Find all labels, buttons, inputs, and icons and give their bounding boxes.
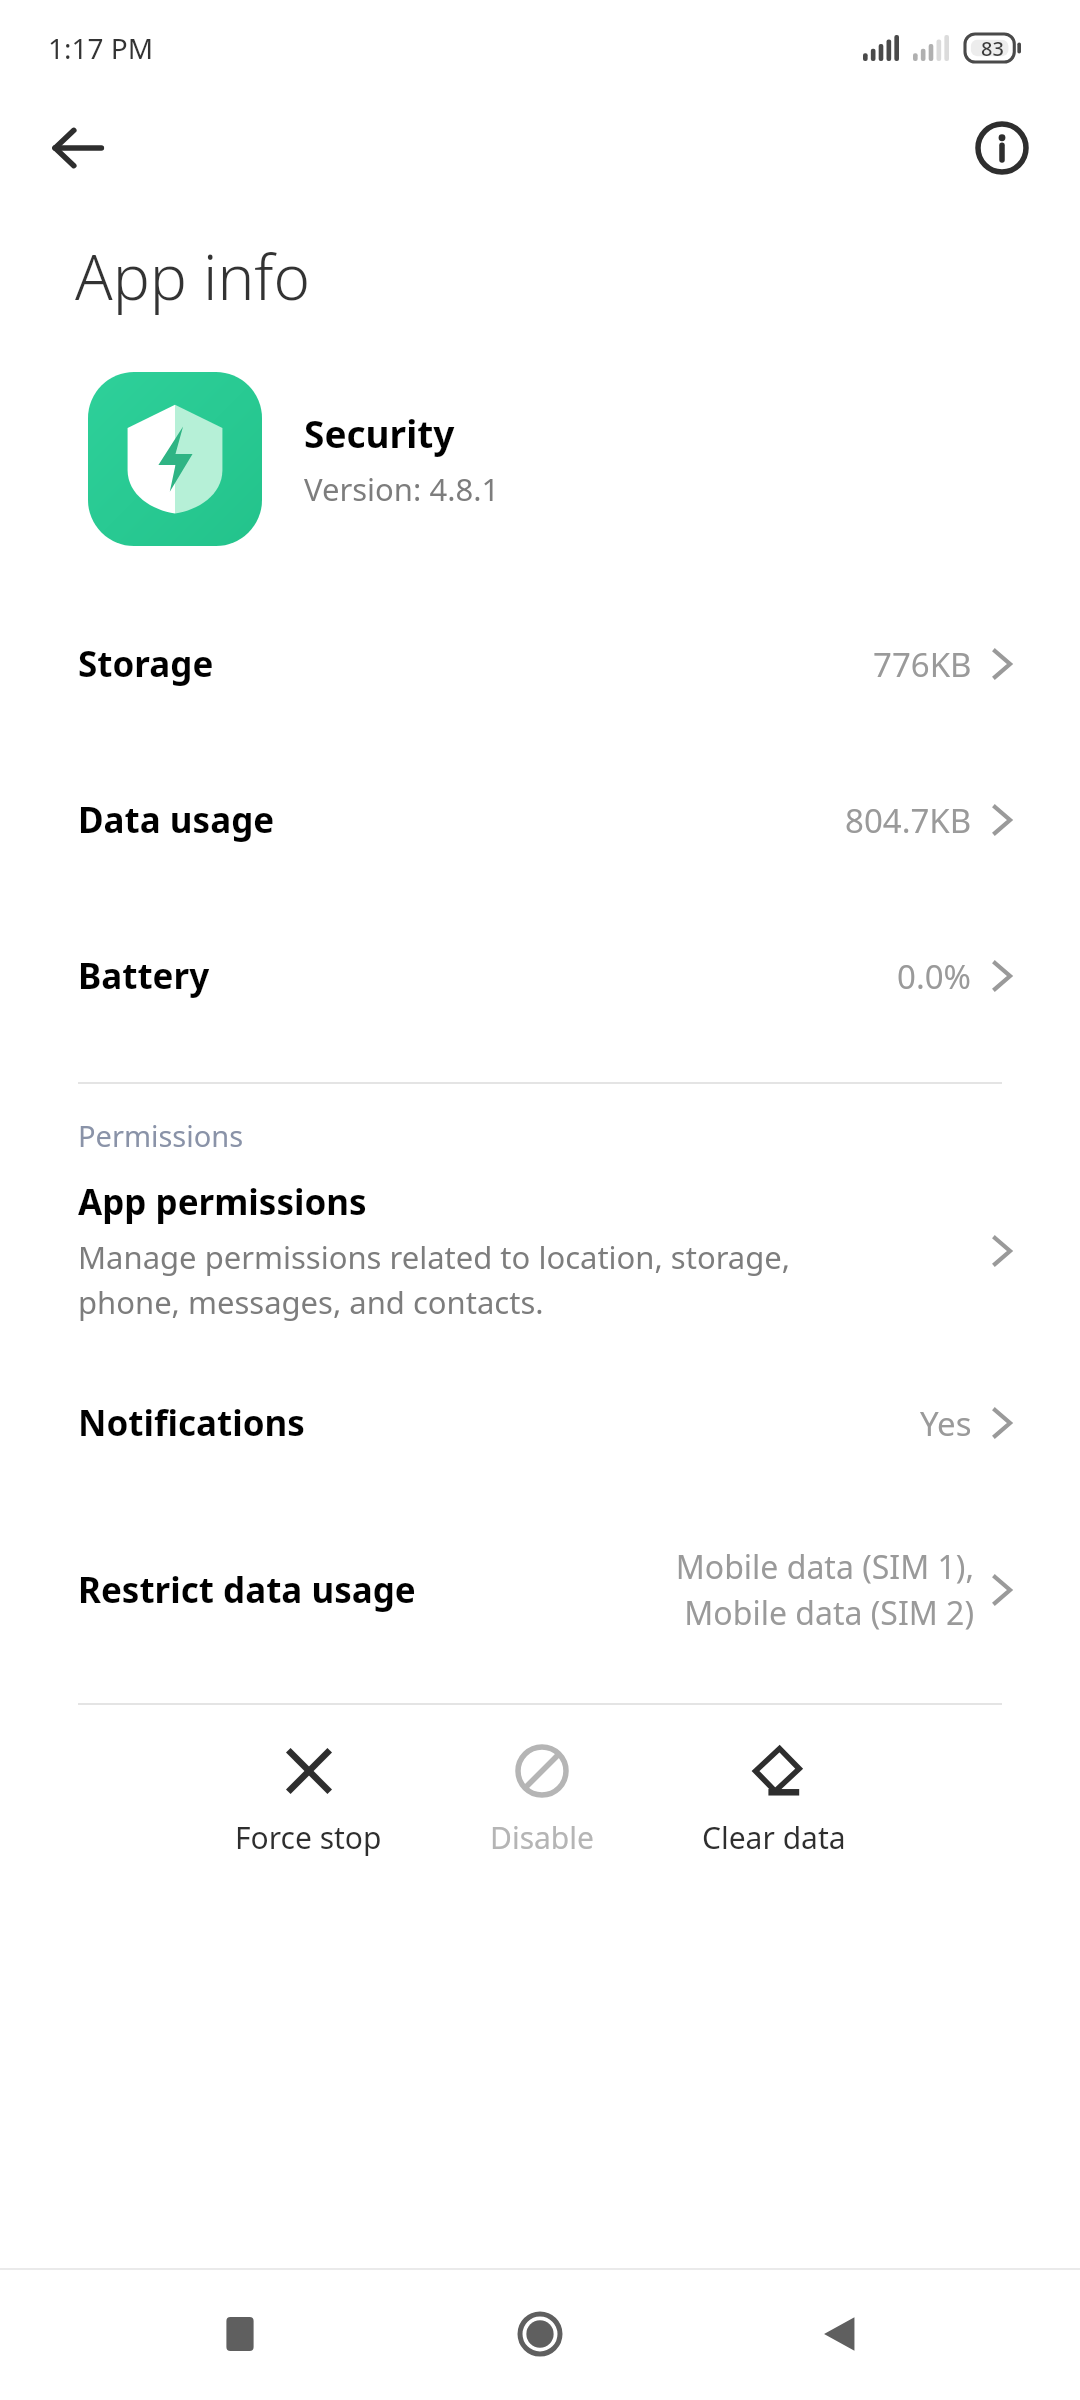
button[interactable]: Clear data	[678, 1733, 870, 1868]
button[interactable]: Force stop	[211, 1733, 406, 1868]
staticText: 804.7KB	[845, 798, 972, 843]
staticText: Manage permissions related to location, …	[78, 1236, 791, 1323]
button[interactable]: Storage	[0, 586, 1080, 742]
staticText: 776KB	[873, 642, 972, 687]
staticText: Clear data	[702, 1817, 846, 1858]
button[interactable]: Data usage	[0, 742, 1080, 898]
staticText: 83	[981, 35, 1004, 62]
button[interactable]: Recents	[180, 2274, 300, 2394]
button[interactable]: Back	[780, 2274, 900, 2394]
button[interactable]: Back	[30, 100, 126, 196]
staticText: Data usage	[78, 796, 275, 844]
staticText: 1:17 PM	[48, 29, 154, 67]
staticText: Security	[304, 408, 455, 458]
button[interactable]: App permissions	[0, 1155, 1080, 1345]
staticText: Version: 4.8.1	[304, 468, 500, 510]
staticText: Force stop	[235, 1817, 382, 1858]
button[interactable]: Notifications	[0, 1345, 1080, 1501]
button[interactable]: Disable	[466, 1733, 618, 1868]
staticText: Battery	[78, 952, 210, 1000]
staticText: Mobile data (SIM 1), Mobile data (SIM 2)	[675, 1545, 974, 1634]
staticText: Permissions	[78, 1116, 244, 1155]
button[interactable]: Restrict data usage	[0, 1501, 1080, 1677]
staticText: Storage	[78, 640, 214, 688]
staticText: Disable	[490, 1817, 594, 1858]
staticText: Notifications	[78, 1399, 305, 1447]
staticText: Restrict data usage	[78, 1566, 416, 1614]
staticText: 0.0%	[897, 954, 972, 999]
staticText: App info	[75, 234, 311, 318]
staticText: Yes	[920, 1401, 972, 1446]
button[interactable]: Battery	[0, 898, 1080, 1054]
button[interactable]: App details info	[954, 100, 1050, 196]
staticText: App permissions	[78, 1178, 367, 1226]
button[interactable]: Home	[480, 2274, 600, 2394]
